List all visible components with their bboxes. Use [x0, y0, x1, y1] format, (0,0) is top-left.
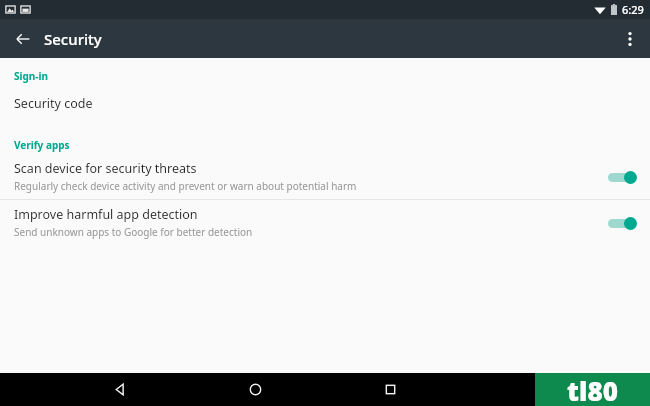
- button[interactable]: More options: [616, 25, 644, 53]
- button[interactable]: Recent apps: [373, 373, 407, 406]
- staticText: Security: [44, 29, 102, 49]
- staticText: Regularly check device activity and prev…: [14, 179, 357, 193]
- button[interactable]: Scan device for security threats: [0, 154, 650, 199]
- staticText: Scan device for security threats: [14, 160, 197, 177]
- button[interactable]: Toggle: [605, 167, 637, 187]
- button[interactable]: Back: [10, 26, 36, 52]
- button[interactable]: Home: [238, 373, 272, 406]
- staticText: Sign-in: [14, 69, 49, 83]
- button[interactable]: Toggle: [605, 213, 637, 233]
- staticText: tl80: [567, 373, 618, 406]
- staticText: Security code: [14, 95, 93, 112]
- button[interactable]: Improve harmful app detection: [0, 200, 650, 245]
- staticText: Verify apps: [14, 138, 70, 152]
- staticText: 6:29: [622, 2, 644, 17]
- staticText: Send unknown apps to Google for better d…: [14, 225, 253, 239]
- staticText: Improve harmful app detection: [14, 206, 198, 223]
- button[interactable]: Security code: [0, 85, 650, 122]
- button[interactable]: Back: [102, 373, 136, 406]
